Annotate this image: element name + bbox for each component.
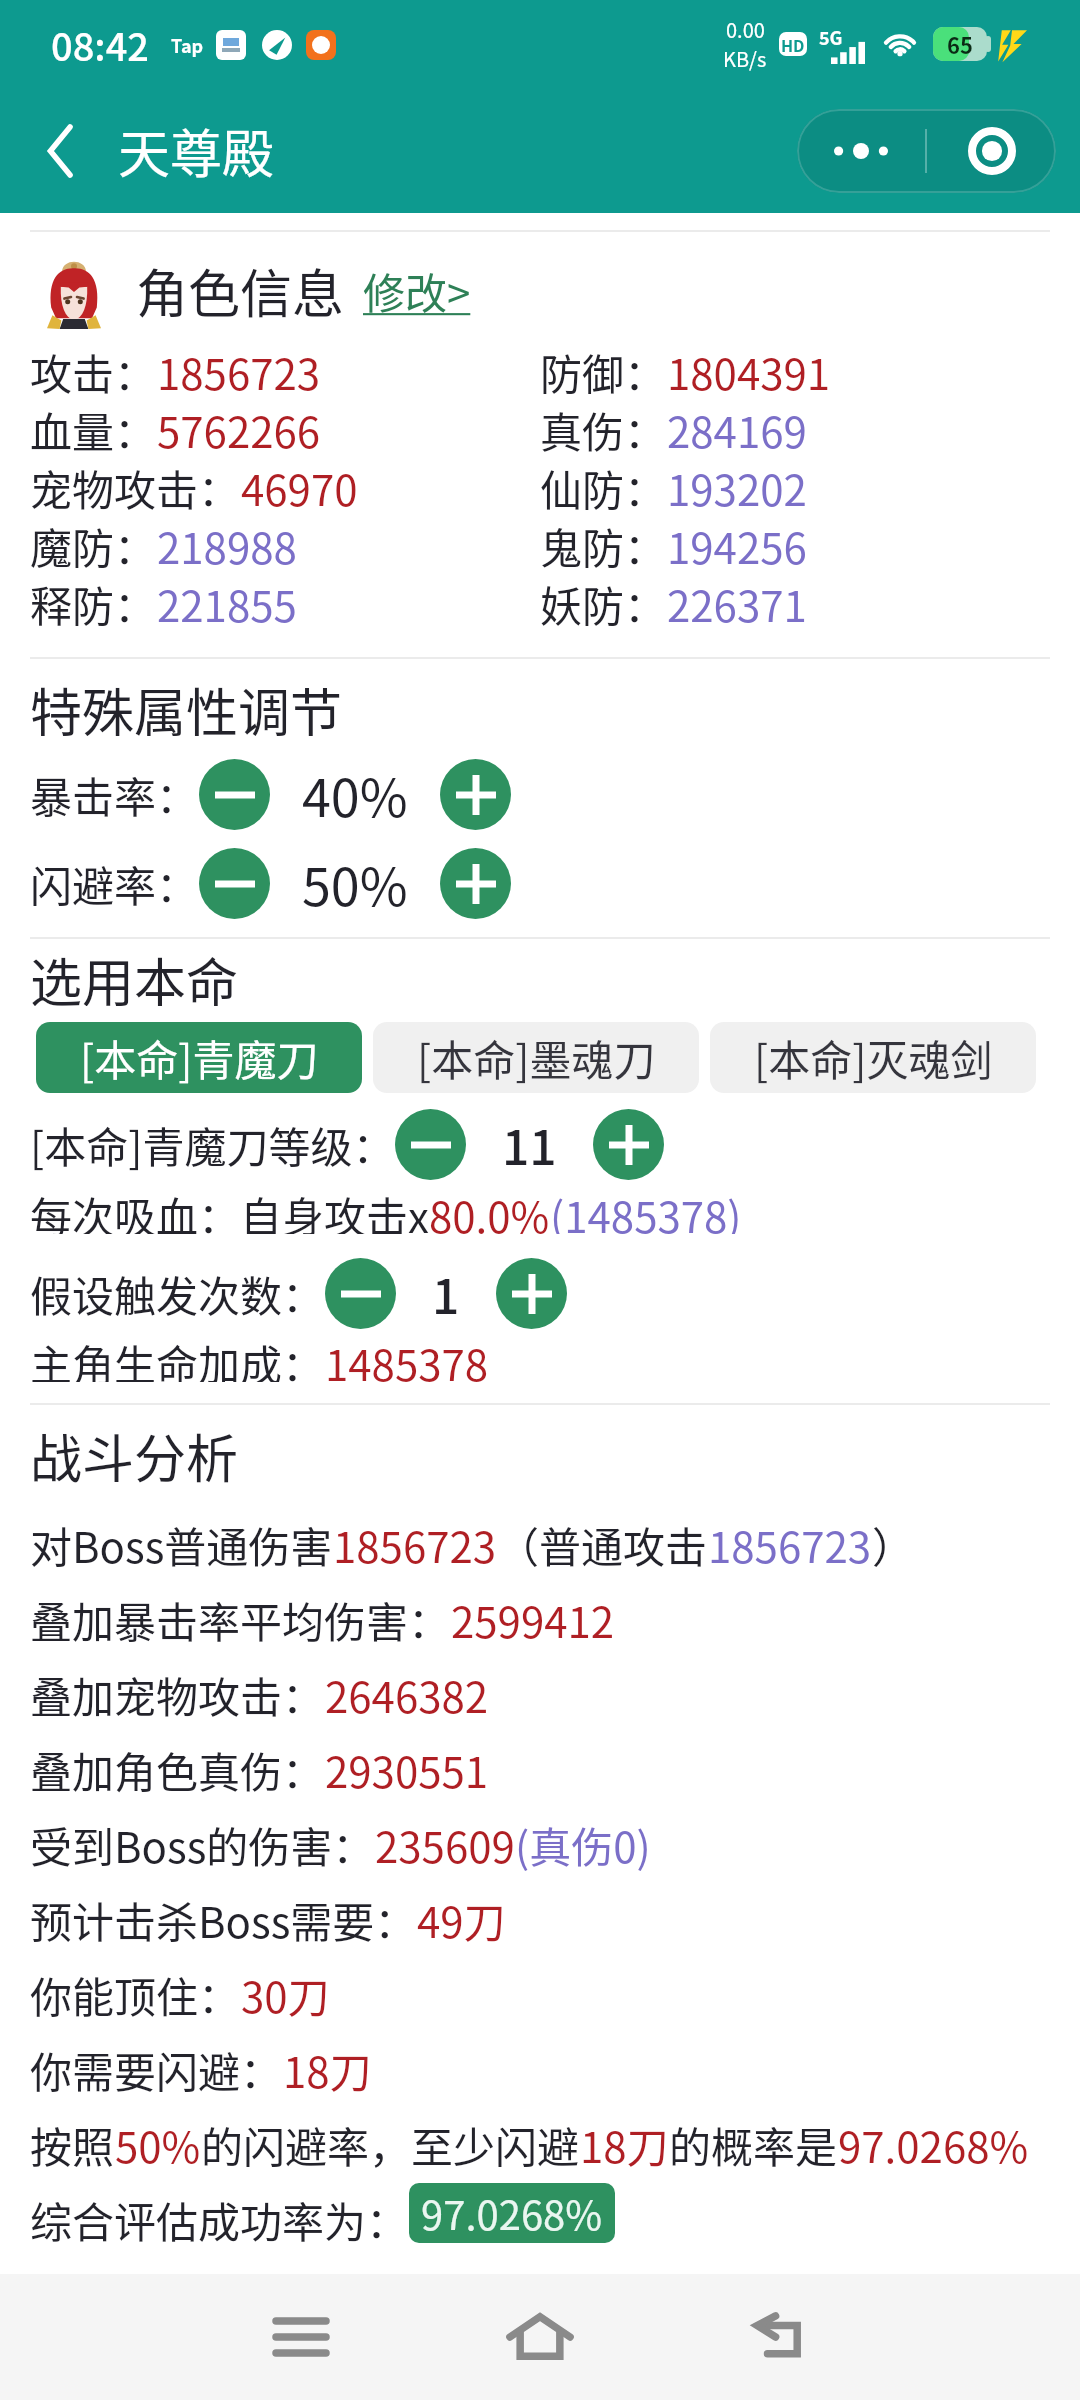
staticText: 闪避率： (30, 853, 199, 914)
staticText: 11 (502, 1109, 557, 1179)
staticText: 97.0268% (838, 2114, 1029, 2175)
staticText: 角色信息 (136, 253, 345, 328)
staticText: 叠加角色真伤： (30, 1739, 325, 1800)
button[interactable]: Recent apps (241, 2277, 361, 2397)
staticText: 194256 (667, 515, 807, 573)
staticText: 0.00 (726, 15, 765, 44)
staticText: 的概率是 (669, 2114, 838, 2175)
staticText: 妖防： (540, 573, 667, 631)
staticText: 血量： (30, 399, 157, 457)
staticText: 你需要闪避： (30, 2039, 283, 2100)
staticText: 65 (947, 28, 973, 60)
staticText: 08:42 (51, 17, 149, 72)
staticText: 2599412 (451, 1589, 615, 1650)
staticText: [本命]青魔刀等级： (30, 1114, 395, 1175)
staticText: 的闪避率，至少闪避 (201, 2114, 580, 2175)
staticText: KB/s (723, 44, 767, 73)
staticText: 1485378 (325, 1332, 489, 1382)
staticText: 50% (302, 846, 408, 921)
staticText: 46970 (241, 457, 358, 515)
staticText: 对Boss普通伤害 (30, 1514, 333, 1575)
staticText: ） (872, 1514, 915, 1575)
staticText: 30刀 (241, 1964, 330, 2025)
staticText: 18刀 (580, 2114, 669, 2175)
staticText: 226371 (667, 573, 807, 631)
staticText: [本命]墨魂刀 (417, 1027, 656, 1088)
staticText: 235609 (375, 1814, 515, 1875)
staticText: （普通攻击 (497, 1514, 708, 1575)
staticText: 2930551 (325, 1739, 489, 1800)
staticText: [本命]灭魂剑 (754, 1027, 993, 1088)
staticText: 攻击： (30, 341, 157, 399)
staticText: 50% (115, 2114, 201, 2175)
button[interactable]: Decrease level (395, 1109, 466, 1180)
staticText: 暴击率： (30, 764, 199, 825)
button[interactable]: Home (480, 2277, 600, 2397)
staticText: 选用本命 (30, 942, 239, 1006)
staticText: 释防： (30, 573, 157, 631)
staticText: (真伤0) (515, 1814, 651, 1875)
staticText: 40% (302, 757, 408, 832)
staticText: (1485378) (550, 1184, 742, 1234)
button[interactable]: Back (721, 2277, 841, 2397)
staticText: 按照 (30, 2114, 115, 2175)
staticText: 221855 (157, 573, 297, 631)
staticText: 主角生命加成： (30, 1332, 325, 1382)
staticText: 2646382 (325, 1664, 489, 1725)
staticText: 仙防： (540, 457, 667, 515)
button[interactable]: Increase 闪避率： (440, 848, 511, 919)
staticText: 真伤： (540, 399, 667, 457)
button[interactable]: Increase trigger count (496, 1258, 567, 1329)
staticText: 49刀 (417, 1889, 506, 1950)
staticText: 18刀 (283, 2039, 372, 2100)
staticText: 1804391 (667, 341, 831, 399)
staticText: 你能顶住： (30, 1964, 241, 2025)
staticText: 假设触发次数： (30, 1263, 325, 1324)
staticText: 5762266 (157, 399, 321, 457)
staticText: 284169 (667, 399, 807, 457)
staticText: 预计击杀Boss需要： (30, 1889, 417, 1950)
button[interactable]: [本命]墨魂刀 (373, 1022, 699, 1093)
staticText: 宠物攻击： (30, 457, 241, 515)
button[interactable]: [本命]青魔刀 (36, 1022, 362, 1093)
staticText: 97.0268% (421, 2184, 603, 2242)
button[interactable]: Increase level (593, 1109, 664, 1180)
button[interactable]: Close mini program (927, 109, 1056, 193)
staticText: 鬼防： (540, 515, 667, 573)
staticText: 80.0% (429, 1184, 550, 1234)
staticText: 战斗分析 (30, 1418, 239, 1484)
button[interactable]: 修改> (363, 260, 471, 321)
staticText: 叠加宠物攻击： (30, 1664, 325, 1725)
staticText: 综合评估成功率为： (30, 2189, 409, 2250)
staticText: Tap (171, 32, 204, 58)
button[interactable]: Decrease trigger count (325, 1258, 396, 1329)
staticText: 特殊属性调节 (30, 672, 343, 736)
staticText: 魔防： (30, 515, 157, 573)
staticText: 受到Boss的伤害： (30, 1814, 375, 1875)
button[interactable]: Increase 暴击率： (440, 759, 511, 830)
button[interactable]: Back (12, 103, 108, 199)
staticText: 天尊殿 (118, 113, 275, 188)
staticText: 每次吸血：自身攻击x (30, 1184, 429, 1234)
staticText: 218988 (157, 515, 297, 573)
staticText: HD (781, 33, 805, 56)
button[interactable]: Decrease 闪避率： (199, 848, 270, 919)
button[interactable]: [本命]灭魂剑 (710, 1022, 1036, 1093)
button[interactable]: Decrease 暴击率： (199, 759, 270, 830)
button[interactable]: More options (797, 109, 925, 193)
staticText: 1856723 (708, 1514, 872, 1575)
staticText: 1 (432, 1258, 460, 1328)
staticText: 1856723 (333, 1514, 497, 1575)
staticText: 1856723 (157, 341, 321, 399)
staticText: [本命]青魔刀 (80, 1027, 319, 1088)
staticText: 5G (819, 24, 843, 50)
staticText: 叠加暴击率平均伤害： (30, 1589, 451, 1650)
staticText: 修改> (363, 260, 471, 321)
staticText: 防御： (540, 341, 667, 399)
staticText: 193202 (667, 457, 807, 515)
